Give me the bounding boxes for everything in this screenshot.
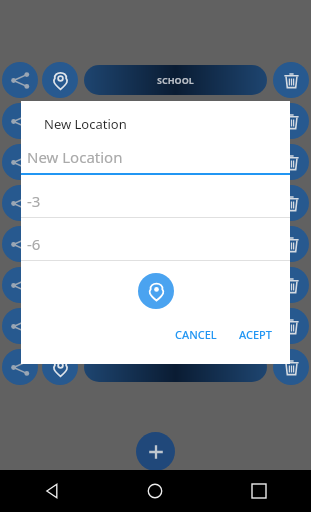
- button[interactable]: Share: [2, 185, 38, 221]
- button[interactable]: Recent apps: [207, 470, 311, 512]
- staticText: New Location: [44, 115, 127, 133]
- button[interactable]: Delete: [273, 144, 309, 180]
- staticText: ACEPT: [239, 327, 272, 342]
- button[interactable]: Delete: [273, 308, 309, 344]
- button[interactable]: [84, 188, 267, 218]
- button[interactable]: Delete: [273, 349, 309, 385]
- button[interactable]: [84, 311, 267, 341]
- staticText: CANCEL: [175, 327, 217, 342]
- button[interactable]: Share: [2, 267, 38, 303]
- button[interactable]: Share: [2, 144, 38, 180]
- button[interactable]: [84, 270, 267, 300]
- button[interactable]: -6: [21, 234, 290, 261]
- staticText: -6: [27, 234, 41, 254]
- button[interactable]: [84, 352, 267, 382]
- button[interactable]: Delete: [273, 62, 309, 98]
- staticText: SCHOOL: [157, 74, 194, 86]
- button[interactable]: New Location: [21, 147, 290, 175]
- button[interactable]: Delete: [273, 185, 309, 221]
- button[interactable]: Show on map: [42, 103, 78, 139]
- button[interactable]: SCHOOL: [84, 65, 267, 95]
- button[interactable]: Share: [2, 308, 38, 344]
- button[interactable]: Show on map: [42, 349, 78, 385]
- button[interactable]: Show on map: [42, 185, 78, 221]
- staticText: -3: [27, 191, 41, 211]
- button[interactable]: Delete: [273, 226, 309, 262]
- button[interactable]: Delete: [273, 103, 309, 139]
- button[interactable]: Share: [2, 349, 38, 385]
- button[interactable]: Delete: [273, 267, 309, 303]
- button[interactable]: Add location: [136, 432, 175, 471]
- button[interactable]: ACEPT: [235, 321, 276, 348]
- button[interactable]: Show on map: [42, 226, 78, 262]
- staticText: New Location: [27, 147, 123, 167]
- button[interactable]: Pick location on map: [138, 273, 174, 309]
- button[interactable]: CANCEL: [171, 321, 221, 348]
- button[interactable]: Show on map: [42, 144, 78, 180]
- button[interactable]: Show on map: [42, 62, 78, 98]
- button[interactable]: -3: [21, 191, 290, 218]
- button[interactable]: Home: [103, 470, 207, 512]
- button[interactable]: [84, 147, 267, 177]
- button[interactable]: [84, 106, 267, 136]
- button[interactable]: Back: [0, 470, 103, 512]
- button[interactable]: Share: [2, 226, 38, 262]
- button[interactable]: Share: [2, 103, 38, 139]
- button[interactable]: Share: [2, 62, 38, 98]
